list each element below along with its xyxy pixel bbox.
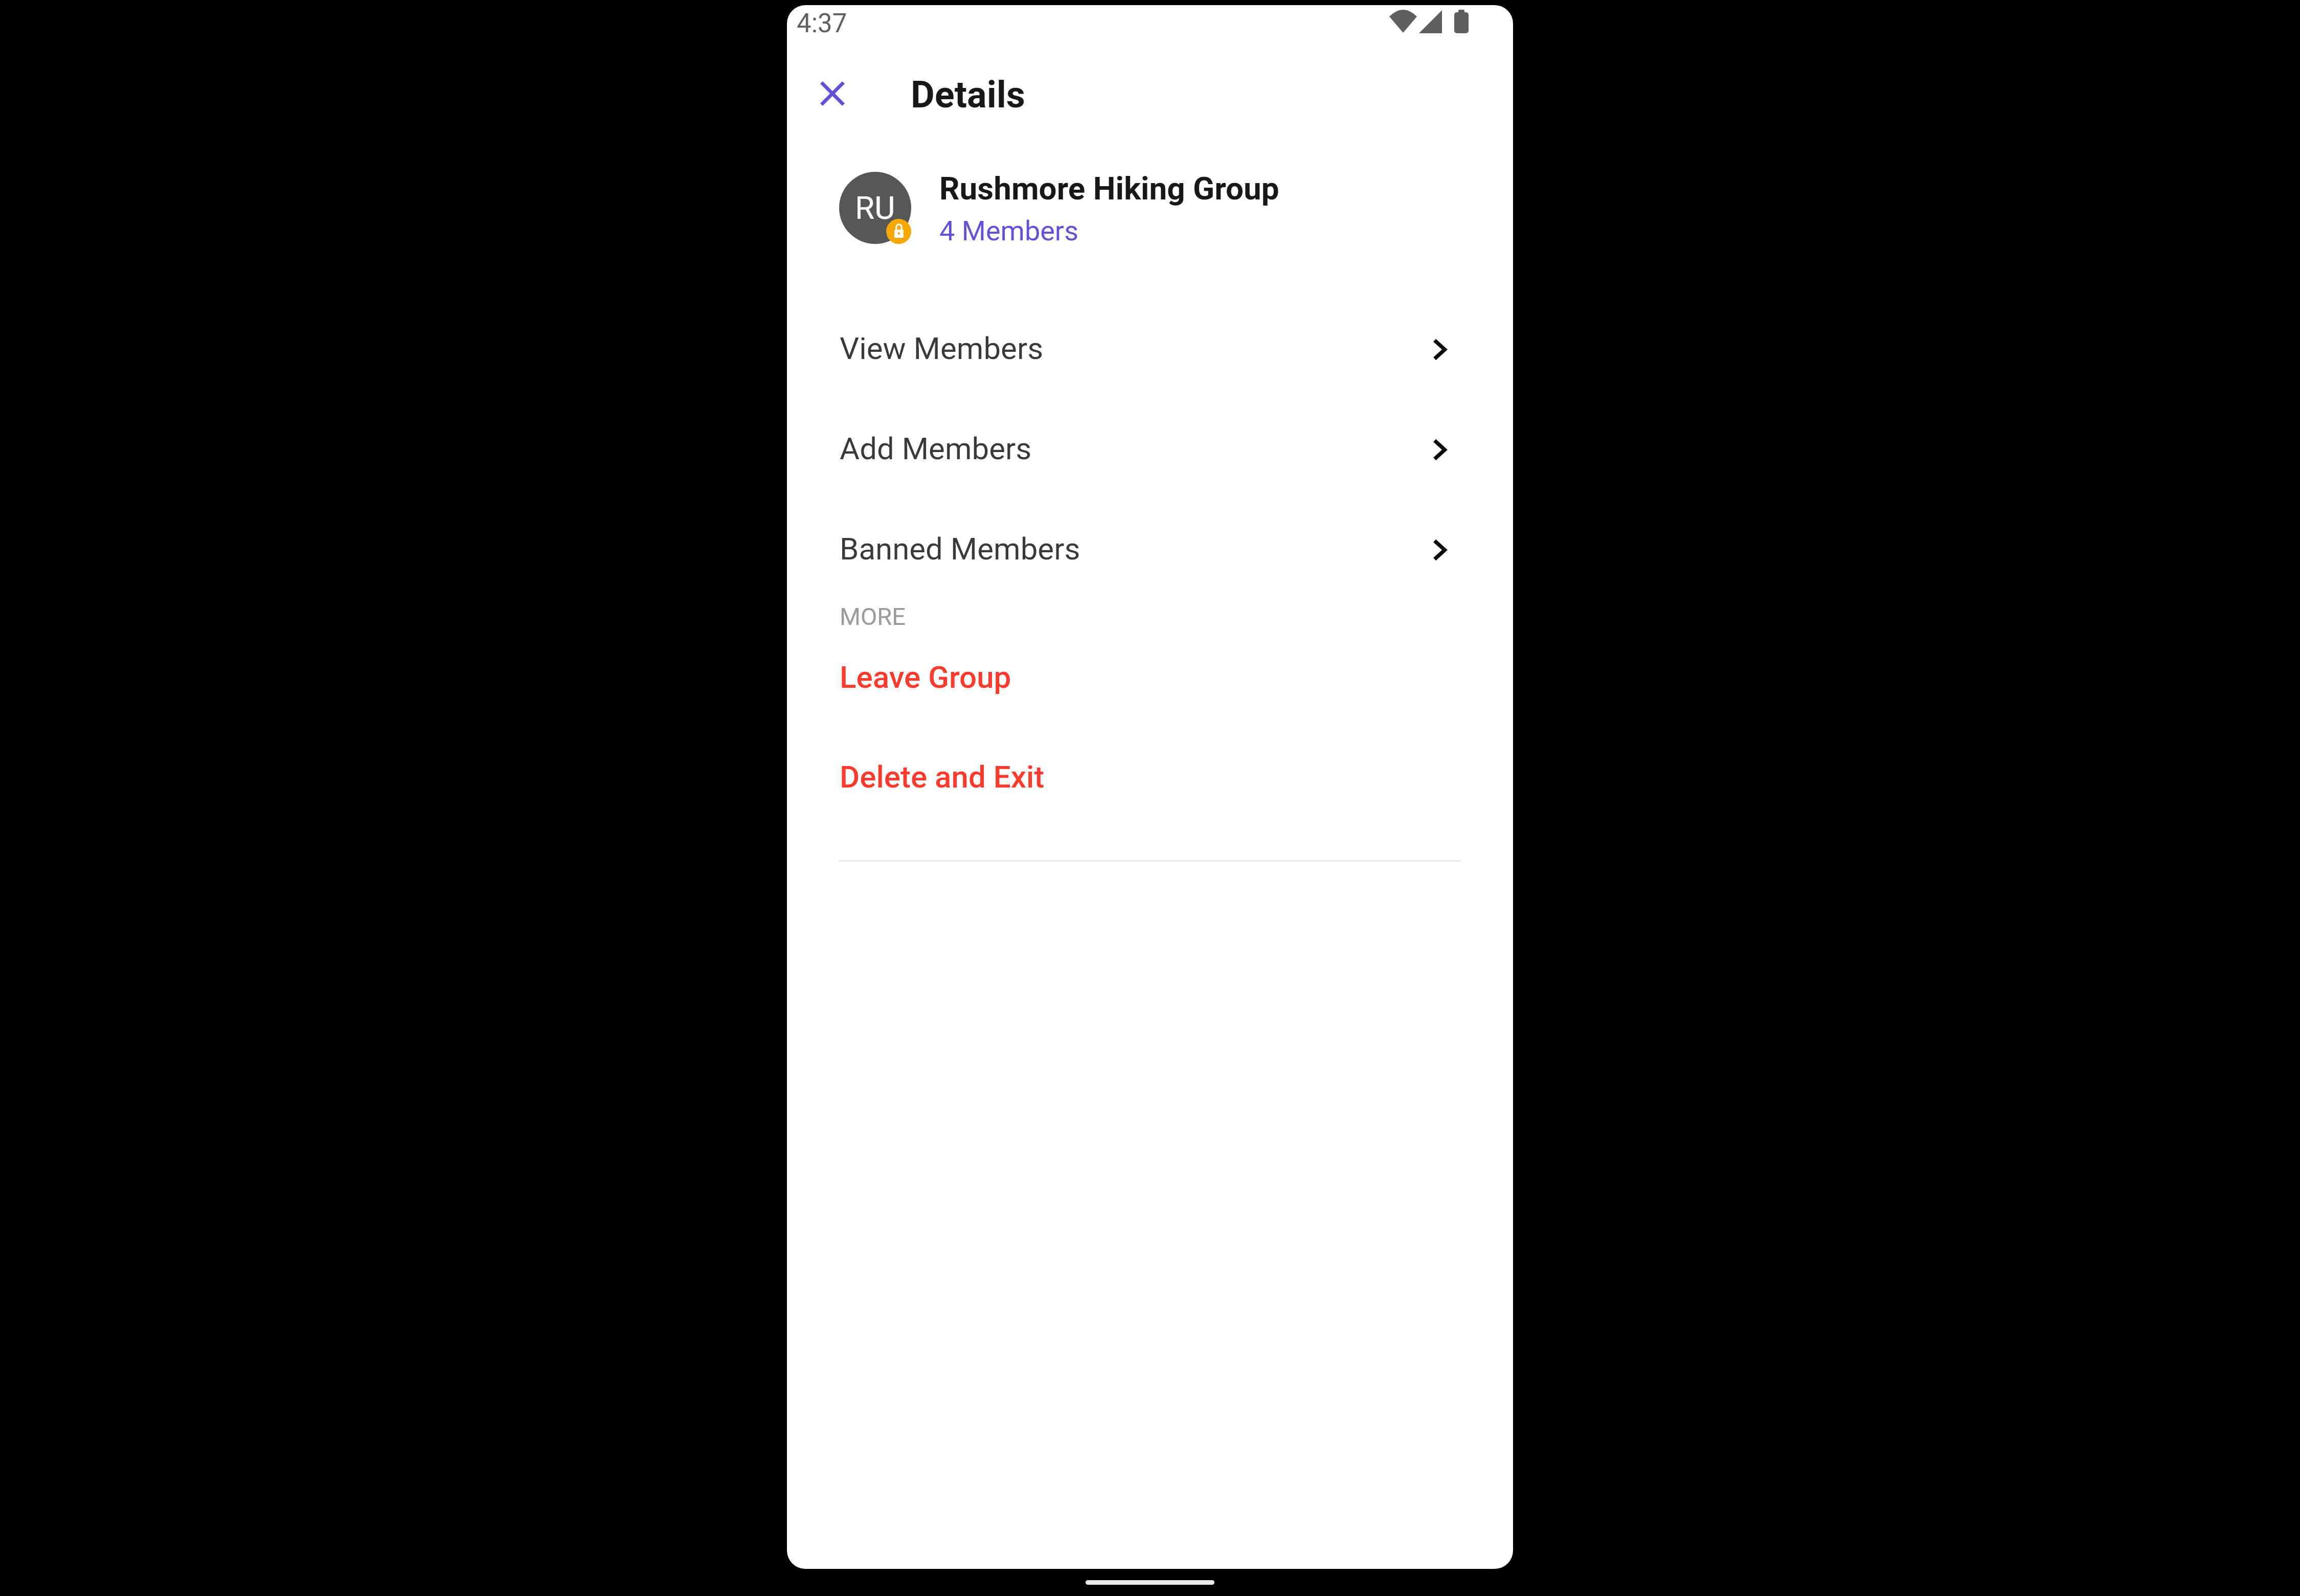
button[interactable]: View Members <box>787 311 1513 412</box>
button[interactable]: Delete and Exit <box>787 744 1513 810</box>
staticText: RU <box>855 189 895 227</box>
staticText: 4:37 <box>797 8 847 39</box>
button[interactable]: Close <box>805 66 860 121</box>
staticText: MORE <box>840 602 906 631</box>
staticText: 4 Members <box>939 215 1079 247</box>
staticText: Add Members <box>840 431 1032 466</box>
staticText: Rushmore Hiking Group <box>939 170 1279 207</box>
staticText: Details <box>911 73 1025 116</box>
staticText: Banned Members <box>840 531 1080 567</box>
staticText: View Members <box>840 330 1044 366</box>
staticText: Leave Group <box>840 659 1011 695</box>
staticText: Delete and Exit <box>840 759 1045 795</box>
button[interactable]: Add Members <box>787 412 1513 512</box>
button[interactable]: Leave Group <box>787 644 1513 710</box>
button[interactable] <box>787 159 1513 259</box>
button[interactable]: Banned Members <box>787 512 1513 612</box>
